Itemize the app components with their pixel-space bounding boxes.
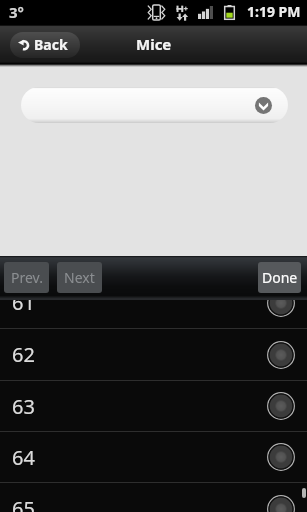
staticText: Mice	[136, 34, 172, 54]
button[interactable]: Prev.	[4, 262, 49, 293]
staticText: 1:19 PM	[247, 2, 301, 21]
button[interactable]: Next	[57, 262, 102, 293]
staticText: 63	[12, 393, 35, 420]
button[interactable]: Back	[10, 32, 80, 58]
staticText: Prev.	[11, 268, 43, 287]
other: Open list	[255, 97, 272, 114]
staticText: 61	[12, 289, 35, 316]
staticText: 65	[12, 495, 35, 512]
staticText: Next	[64, 268, 95, 287]
staticText: Back	[34, 35, 68, 54]
button[interactable]: Done	[258, 262, 301, 293]
button[interactable]: 65	[0, 483, 307, 512]
staticText: 64	[12, 444, 35, 471]
button[interactable]: Open list	[21, 87, 288, 123]
staticText: 62	[12, 341, 35, 368]
button[interactable]: 64	[0, 432, 307, 482]
button[interactable]: 62	[0, 329, 307, 380]
staticText: 3°	[9, 2, 24, 22]
staticText: Done	[262, 268, 298, 287]
button[interactable]: 63	[0, 381, 307, 431]
button[interactable]: 61	[0, 277, 307, 328]
